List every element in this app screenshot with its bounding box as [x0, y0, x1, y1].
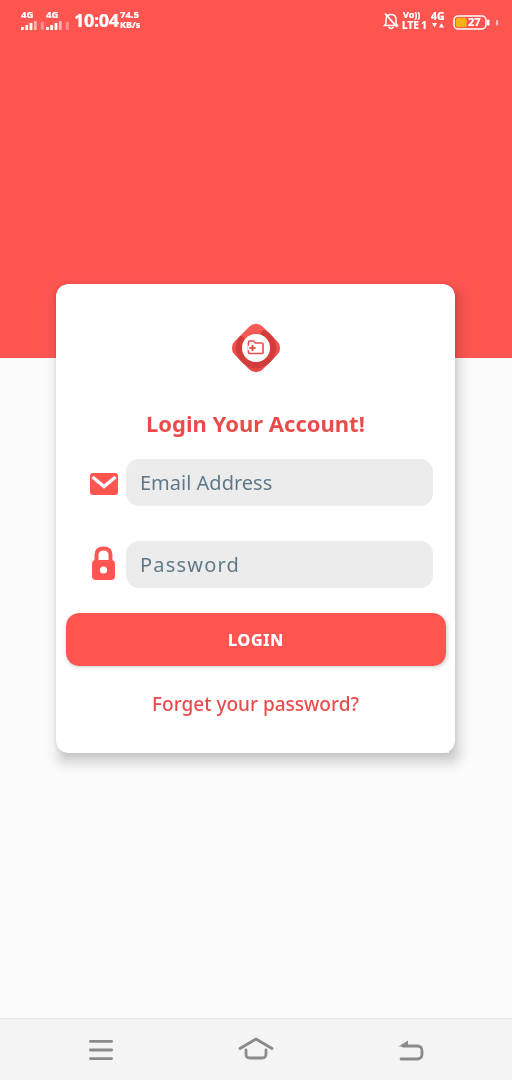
staticText: 4G	[46, 8, 59, 21]
staticText: LTE 1	[402, 18, 428, 32]
staticText: KB/s	[120, 18, 141, 30]
staticText: 10:04	[74, 8, 119, 33]
staticText: Email Address	[140, 469, 273, 496]
button[interactable]: Password	[126, 541, 433, 588]
staticText: 4G	[21, 8, 34, 21]
button[interactable]: Email Address	[126, 459, 433, 506]
staticText: Vo))	[403, 8, 421, 20]
button[interactable]	[77, 1032, 125, 1068]
staticText: Login Your Account!	[146, 408, 365, 438]
button[interactable]: Forget your password?	[152, 691, 359, 717]
staticText: 27	[468, 14, 481, 29]
button[interactable]: LOGIN	[66, 613, 446, 666]
staticText: Password	[140, 551, 241, 578]
staticText: 4G	[431, 9, 445, 23]
staticText: LOGIN	[228, 629, 285, 651]
button[interactable]	[232, 1030, 280, 1068]
button[interactable]	[387, 1032, 435, 1068]
staticText: 74.5	[120, 8, 139, 21]
